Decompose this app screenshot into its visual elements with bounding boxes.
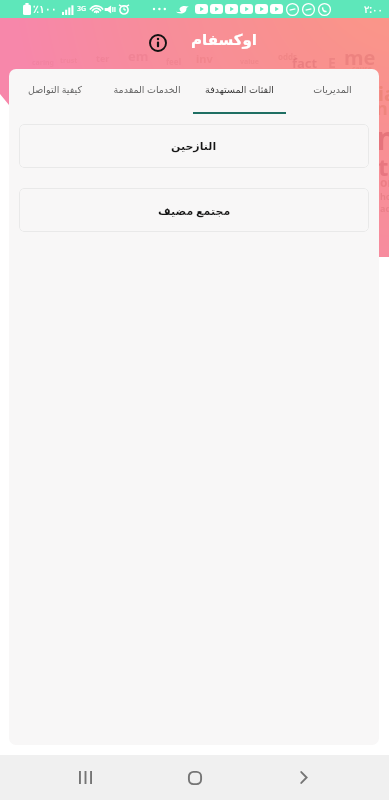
button[interactable]: مجتمع مضيف	[19, 188, 369, 232]
staticText: النازحين	[171, 140, 217, 153]
staticText: n	[376, 116, 389, 160]
staticText: مجتمع مضيف	[158, 203, 231, 218]
button[interactable]: الخدمات المقدمة	[101, 69, 193, 114]
staticText: ٢:٠٠	[364, 2, 383, 16]
staticText: or	[380, 174, 389, 190]
button[interactable]: Home	[140, 755, 249, 800]
staticText: ٪١٠٠	[33, 3, 57, 16]
staticText: ter	[96, 52, 110, 64]
button[interactable]: Info	[144, 29, 171, 56]
button[interactable]: Recents	[31, 755, 140, 800]
button[interactable]: Back	[249, 755, 358, 800]
staticText: الفئات المستهدفة	[205, 83, 274, 96]
staticText: E	[328, 53, 336, 72]
staticText: كيفية التواصل	[28, 83, 82, 96]
staticText: ni	[376, 96, 389, 121]
staticText: الخدمات المقدمة	[113, 83, 181, 96]
staticText: 3G	[77, 4, 87, 14]
staticText: fact	[292, 54, 318, 72]
staticText: اوكسفام	[191, 31, 257, 48]
staticText: cause	[352, 64, 373, 74]
button[interactable]: كيفية التواصل	[9, 69, 101, 114]
staticText: ia	[378, 80, 389, 107]
staticText: th	[378, 150, 389, 183]
staticText: feel	[166, 56, 182, 67]
button[interactable]: الفئات المستهدفة	[193, 69, 286, 114]
staticText: em	[128, 47, 149, 65]
staticText: odds	[278, 51, 298, 62]
staticText: ade	[380, 202, 389, 214]
staticText: المديريات	[313, 84, 352, 95]
staticText: inv	[196, 51, 213, 66]
button[interactable]: النازحين	[19, 124, 369, 168]
staticText: hop	[380, 190, 389, 202]
staticText: me	[344, 44, 376, 71]
button[interactable]: المديريات	[286, 69, 379, 114]
